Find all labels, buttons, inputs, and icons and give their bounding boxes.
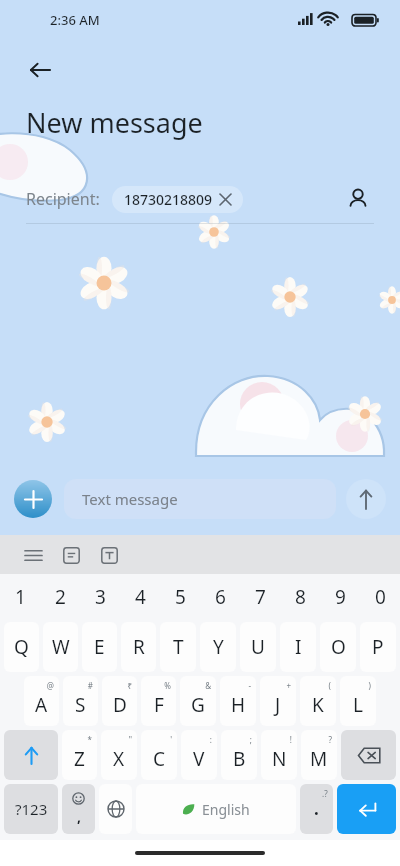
- staticText: O: [331, 634, 346, 660]
- button[interactable]: Menu: [18, 540, 48, 570]
- button[interactable]: 18730218809: [112, 186, 243, 213]
- button[interactable]: *: [62, 730, 97, 780]
- button[interactable]: 1: [0, 574, 40, 620]
- staticText: ;: [249, 734, 252, 745]
- button[interactable]: T: [160, 622, 196, 672]
- staticText: %: [164, 680, 171, 691]
- button[interactable]: &: [180, 676, 216, 726]
- button[interactable]: R: [121, 622, 156, 672]
- staticText: Text message: [82, 489, 178, 509]
- button[interactable]: (: [300, 676, 336, 726]
- button[interactable]: U: [240, 622, 276, 672]
- button[interactable]: 7: [240, 574, 280, 620]
- button[interactable]: +: [260, 676, 296, 726]
- button[interactable]: ): [340, 676, 376, 726]
- staticText: B: [233, 746, 246, 772]
- staticText: ,: [77, 807, 81, 826]
- button[interactable]: 5: [160, 574, 200, 620]
- staticText: @: [46, 680, 54, 691]
- staticText: S: [75, 692, 86, 718]
- button[interactable]: ?: [301, 730, 337, 780]
- button[interactable]: 8: [280, 574, 320, 620]
- staticText: 18730218809: [124, 190, 213, 209]
- button[interactable]: 2: [40, 574, 80, 620]
- button[interactable]: #: [63, 676, 98, 726]
- button[interactable]: Text style: [94, 540, 124, 570]
- button[interactable]: 3: [80, 574, 120, 620]
- staticText: 4: [135, 584, 146, 610]
- button[interactable]: Text message: [64, 479, 336, 519]
- staticText: L: [353, 692, 363, 718]
- button[interactable]: E: [82, 622, 117, 672]
- button[interactable]: ?123: [4, 784, 58, 834]
- staticText: N: [272, 746, 287, 772]
- button[interactable]: ": [101, 730, 137, 780]
- staticText: 7: [255, 584, 266, 610]
- staticText: ': [170, 734, 172, 745]
- staticText: K: [312, 692, 324, 718]
- staticText: (: [328, 680, 331, 691]
- button[interactable]: ₹: [102, 676, 137, 726]
- staticText: X: [113, 746, 125, 772]
- staticText: 1: [15, 584, 26, 610]
- staticText: ?: [328, 734, 332, 745]
- button[interactable]: Emoji: [62, 784, 95, 834]
- button[interactable]: Shift: [4, 730, 58, 780]
- button[interactable]: !: [261, 730, 297, 780]
- button[interactable]: -: [220, 676, 256, 726]
- button[interactable]: Back: [18, 48, 62, 92]
- staticText: 8: [295, 584, 306, 610]
- button[interactable]: ;: [221, 730, 257, 780]
- button[interactable]: %: [141, 676, 176, 726]
- button[interactable]: Clipboard: [56, 540, 86, 570]
- staticText: .: [314, 797, 319, 820]
- staticText: P: [372, 634, 384, 660]
- staticText: :: [209, 734, 212, 745]
- staticText: A: [35, 692, 48, 718]
- staticText: #: [87, 680, 93, 691]
- button[interactable]: Contacts: [338, 181, 378, 217]
- staticText: &: [205, 680, 211, 691]
- staticText: T: [173, 634, 184, 660]
- staticText: 3: [95, 584, 106, 610]
- button[interactable]: English: [136, 784, 296, 834]
- staticText: 2: [55, 584, 66, 610]
- staticText: H: [231, 692, 246, 718]
- button[interactable]: Q: [4, 622, 39, 672]
- staticText: M: [310, 746, 328, 772]
- button[interactable]: P: [360, 622, 396, 672]
- staticText: 6: [215, 584, 226, 610]
- staticText: *: [87, 734, 92, 745]
- staticText: G: [191, 692, 205, 718]
- staticText: English: [202, 800, 250, 819]
- staticText: 5: [175, 584, 186, 610]
- button[interactable]: Send: [346, 479, 386, 519]
- staticText: Recipient:: [26, 188, 100, 210]
- button[interactable]: ': [141, 730, 177, 780]
- button[interactable]: .?: [300, 784, 333, 834]
- staticText: R: [133, 634, 145, 660]
- button[interactable]: O: [320, 622, 356, 672]
- button[interactable]: I: [280, 622, 316, 672]
- staticText: C: [153, 746, 166, 772]
- staticText: .?: [322, 788, 328, 799]
- button[interactable]: Enter: [337, 784, 396, 834]
- staticText: New message: [26, 104, 203, 141]
- button[interactable]: Backspace: [341, 730, 396, 780]
- button[interactable]: Y: [200, 622, 236, 672]
- staticText: W: [52, 634, 70, 660]
- staticText: ₹: [127, 680, 132, 691]
- button[interactable]: Attach: [14, 480, 52, 518]
- button[interactable]: :: [181, 730, 217, 780]
- staticText: 2:36 AM: [50, 11, 100, 29]
- staticText: ?123: [15, 799, 48, 819]
- button[interactable]: Change language: [99, 784, 132, 834]
- button[interactable]: W: [43, 622, 78, 672]
- button[interactable]: 4: [120, 574, 160, 620]
- staticText: F: [154, 692, 164, 718]
- button[interactable]: 6: [200, 574, 240, 620]
- button[interactable]: 9: [320, 574, 360, 620]
- staticText: -: [248, 680, 251, 691]
- button[interactable]: 0: [360, 574, 400, 620]
- button[interactable]: @: [24, 676, 59, 726]
